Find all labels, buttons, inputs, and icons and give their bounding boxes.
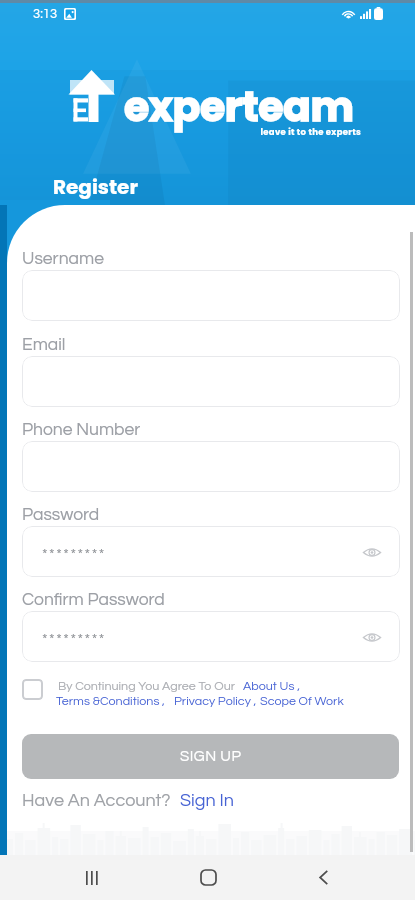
button[interactable]: Recent apps: [68, 855, 116, 900]
button[interactable]: Agree to terms and conditions: [22, 679, 43, 700]
staticText: experteam: [124, 78, 354, 135]
button[interactable]: Home: [184, 855, 232, 900]
staticText: Username: [22, 250, 104, 268]
staticText: By Continuing You Agree To Our: [58, 680, 236, 693]
button[interactable]: Back: [299, 855, 347, 900]
button[interactable]: *********: [22, 611, 400, 662]
staticText: Register: [53, 173, 138, 201]
button[interactable]: Terms &Conditions ,: [56, 695, 165, 708]
staticText: Have An Account?: [22, 791, 171, 810]
button[interactable]: [22, 356, 400, 407]
staticText: *********: [42, 632, 106, 647]
staticText: leave it to the experts: [200, 126, 361, 138]
staticText: *********: [42, 547, 106, 562]
staticText: Password: [22, 506, 100, 524]
staticText: SIGN UP: [180, 749, 242, 764]
button[interactable]: SIGN UP: [22, 734, 399, 779]
button[interactable]: Scope Of Work: [260, 695, 344, 708]
button[interactable]: Show password: [358, 538, 386, 566]
button[interactable]: Sign In: [180, 791, 234, 810]
button[interactable]: [22, 270, 400, 321]
staticText: Email: [22, 336, 66, 354]
staticText: 3:13: [33, 7, 58, 20]
button[interactable]: *********: [22, 526, 400, 577]
button[interactable]: Show password: [358, 623, 386, 651]
staticText: Confirm Password: [22, 591, 165, 609]
button[interactable]: [22, 441, 400, 492]
button[interactable]: About Us ,: [243, 680, 300, 693]
button[interactable]: Privacy Policy ,: [174, 695, 257, 708]
staticText: Phone Number: [22, 421, 141, 439]
